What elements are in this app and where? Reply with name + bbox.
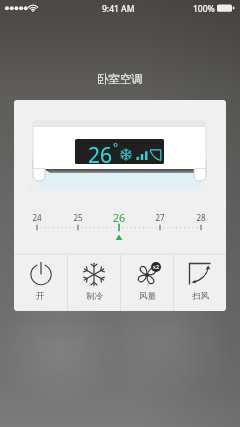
staticText: ° — [113, 139, 119, 155]
staticText: 9:41 AM — [102, 3, 135, 15]
button[interactable]: Swing — [174, 254, 226, 311]
other: Swing — [188, 262, 212, 286]
button[interactable]: Cool mode — [68, 254, 120, 311]
staticText: 100% — [193, 3, 215, 15]
staticText: 制冷 — [86, 291, 103, 302]
staticText: 扫风 — [192, 291, 209, 302]
button[interactable]: Power — [14, 254, 67, 311]
other: Power — [29, 262, 53, 286]
staticText: 25 — [66, 212, 90, 223]
button[interactable]: Fan speed — [121, 254, 173, 311]
other: Cool mode — [82, 262, 106, 286]
staticText: x2 — [151, 263, 161, 270]
staticText: 27 — [148, 212, 172, 223]
staticText: 开 — [36, 291, 45, 302]
staticText: 卧室空调 — [0, 72, 240, 86]
staticText: 28 — [189, 212, 213, 223]
staticText: 24 — [25, 212, 49, 223]
staticText: 风量 — [139, 291, 156, 302]
staticText: 26 — [107, 210, 131, 225]
other: Fan speed — [135, 262, 159, 286]
staticText: 26 — [88, 141, 113, 170]
